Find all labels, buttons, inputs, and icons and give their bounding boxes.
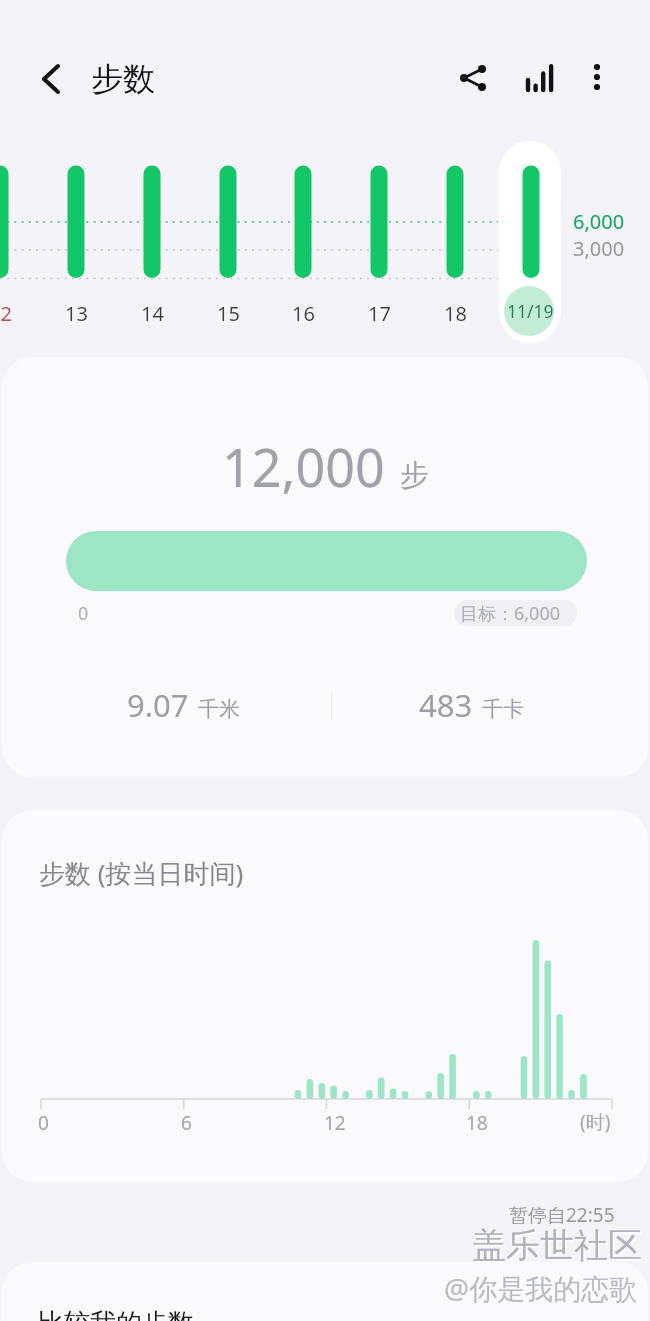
button[interactable]: Selected day 11/19 [499,141,561,343]
button[interactable]: 483 [419,684,524,726]
staticText: 483 [419,684,473,726]
staticText: 3,000 [573,235,625,262]
staticText: 目标：6,000 [460,601,561,626]
staticText: 比较我的步数 [38,1307,194,1321]
staticText: @你是我的恋歌 [446,1271,640,1309]
staticText: 步数 [91,59,155,99]
staticText: 11/19 [507,299,554,323]
staticText: 盖乐世社区 [472,1224,642,1267]
staticText: (时) [580,1109,611,1135]
staticText: 18 [444,300,467,327]
staticText: 步数 (按当日时间) [39,855,244,891]
button[interactable]: Back [23,51,79,107]
staticText: 13 [65,300,88,327]
button[interactable]: More options [569,49,625,105]
staticText: 6,000 [573,208,625,235]
staticText: 步 [400,457,429,494]
staticText: 18 [466,1110,488,1136]
staticText: 12 [0,300,12,327]
staticText: 12 [324,1110,346,1136]
staticText: 17 [368,300,391,327]
staticText: 盖乐世社区 [474,1226,644,1269]
staticText: 15 [217,300,240,327]
button[interactable]: Trends [513,51,569,107]
staticText: 14 [141,300,164,327]
staticText: 12,000 [222,431,385,502]
staticText: 6 [181,1110,192,1136]
staticText: 0 [38,1110,49,1136]
button[interactable]: 比较我的步数 [2,1262,648,1321]
button[interactable]: 9.07 [127,684,240,726]
staticText: @你是我的恋歌 [444,1269,638,1307]
staticText: 0 [78,601,89,626]
staticText: 9.07 [127,684,189,726]
button[interactable]: Share [445,50,501,106]
staticText: 千卡 [482,696,524,722]
staticText: 暂停自22:55 [509,1202,615,1228]
staticText: 16 [292,300,315,327]
staticText: 千米 [198,696,240,722]
